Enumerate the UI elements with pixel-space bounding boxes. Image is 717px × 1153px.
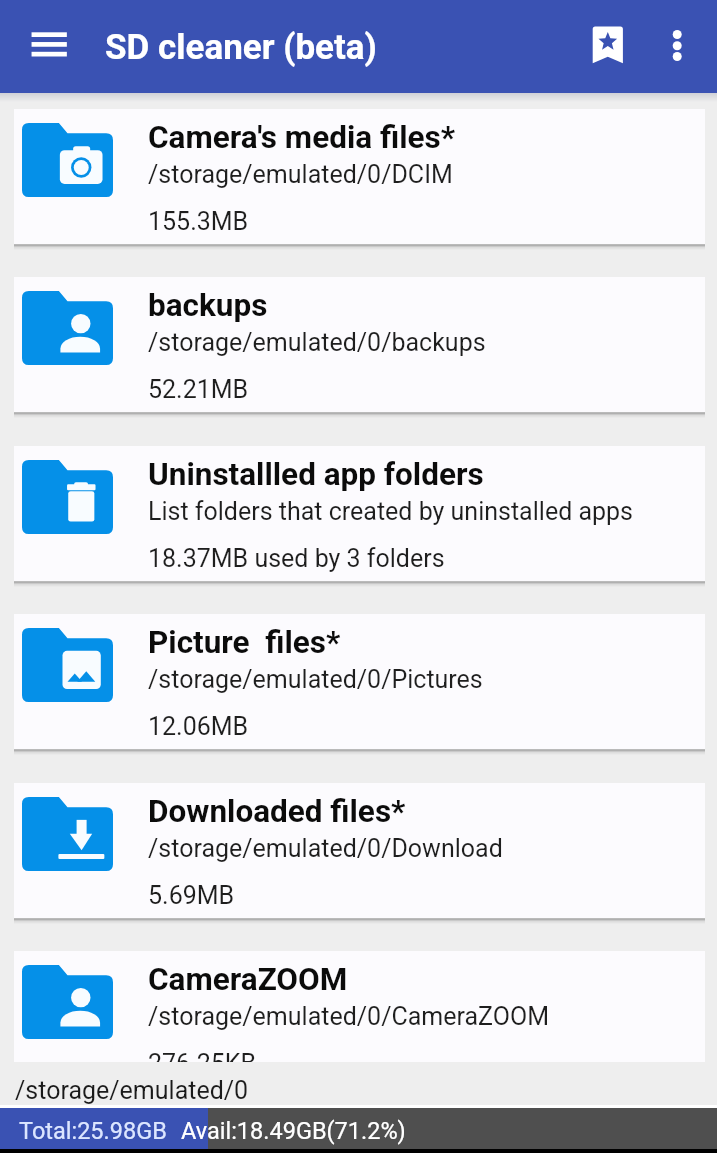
staticText: /storage/emulated/0/Download — [148, 834, 503, 863]
button[interactable]: Camera's media files* — [14, 109, 705, 244]
button[interactable]: Downloaded files* — [14, 783, 705, 918]
staticText: /storage/emulated/0/CameraZOOM — [148, 1002, 549, 1031]
button[interactable]: Open navigation drawer — [13, 9, 85, 81]
staticText: 5.69MB — [148, 881, 235, 910]
staticText: Downloaded files* — [148, 793, 406, 830]
staticText: 155.3MB — [148, 207, 249, 236]
staticText: Uninstallled app folders — [148, 456, 484, 493]
staticText: 52.21MB — [148, 375, 249, 404]
staticText: 18.37MB used by 3 folders — [148, 544, 445, 573]
staticText: 276.25KB — [148, 1049, 257, 1062]
staticText: CameraZOOM — [148, 961, 348, 998]
button[interactable]: Total:25.98GB — [0, 1108, 717, 1149]
staticText: Avail:18.49GB(71.2%) — [181, 1117, 406, 1145]
staticText: SD cleaner (beta) — [105, 27, 377, 68]
staticText: backups — [148, 287, 268, 324]
button[interactable]: CameraZOOM — [14, 951, 705, 1062]
button[interactable]: More options — [645, 9, 717, 81]
staticText: Picture files* — [148, 624, 341, 661]
staticText: /storage/emulated/0/DCIM — [148, 160, 453, 189]
staticText: /storage/emulated/0 — [15, 1076, 249, 1105]
staticText: /storage/emulated/0/backups — [148, 328, 486, 357]
staticText: Camera's media files* — [148, 119, 455, 156]
button[interactable]: /storage/emulated/0 — [0, 1062, 717, 1105]
button[interactable]: Picture files* — [14, 614, 705, 749]
staticText: List folders that created by uninstalled… — [148, 497, 634, 526]
staticText: Total:25.98GB — [19, 1117, 167, 1145]
button[interactable]: Uninstallled app folders — [14, 446, 705, 581]
button[interactable]: backups — [14, 277, 705, 412]
staticText: /storage/emulated/0/Pictures — [148, 665, 483, 694]
button[interactable]: Bookmarks — [572, 8, 644, 80]
staticText: 12.06MB — [148, 712, 249, 741]
